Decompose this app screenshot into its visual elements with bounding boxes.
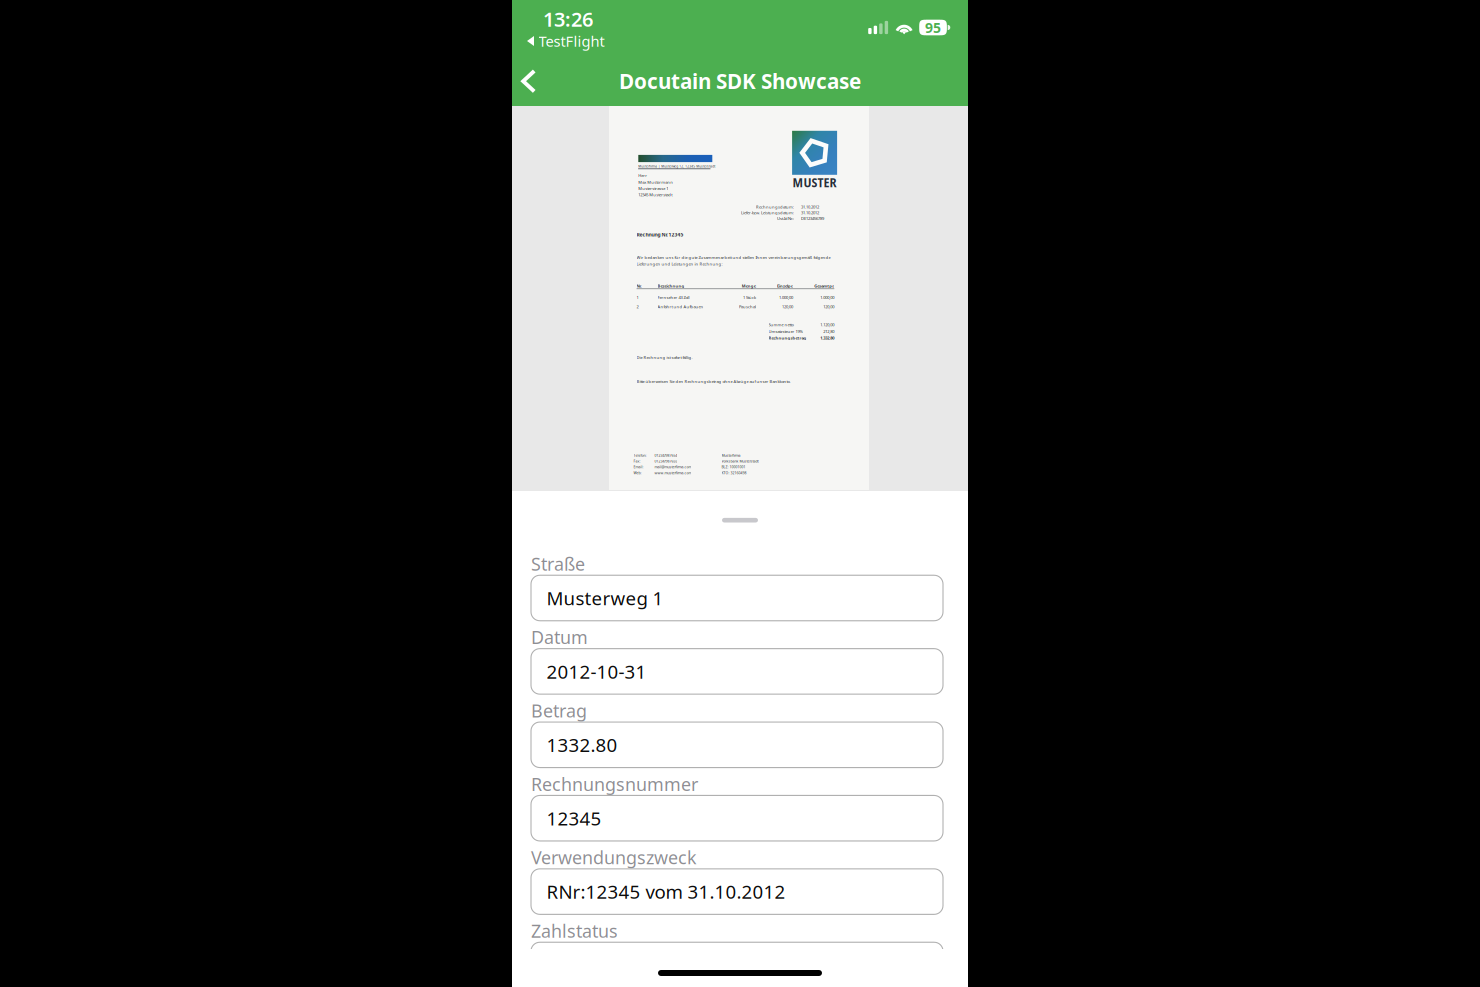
- staticText: Die Rechnung ist sofort fällig.: [637, 355, 693, 360]
- staticText: Fax:: [633, 459, 640, 463]
- staticText: Lieferungen und Leistungen in Rechnung:: [637, 261, 723, 267]
- staticText: 31.10.2012: [801, 204, 819, 210]
- staticText: Volksbank Musterstadt: [721, 459, 758, 463]
- staticText: Fernseher 43 Zoll: [658, 295, 690, 300]
- staticText: KTO: 32160498: [721, 470, 746, 475]
- staticText: Telefon:: [633, 453, 646, 458]
- staticText: 31.10.2012: [801, 210, 819, 215]
- staticText: Anfahrt und Aufbauen: [658, 304, 704, 309]
- staticText: Liefer-bzw. Leistungsdatum:: [741, 210, 794, 215]
- staticText: Ust-IdNr.:: [777, 216, 794, 221]
- staticText: Betrag: [531, 698, 587, 723]
- staticText: 120,00: [823, 304, 834, 309]
- button[interactable]: [531, 942, 943, 987]
- staticText: mail@musterfirma.com: [654, 465, 691, 469]
- staticText: Verwendungszweck: [531, 845, 697, 869]
- staticText: 1: [637, 295, 639, 300]
- staticText: 01234/987654: [654, 453, 677, 458]
- staticText: 212,80: [823, 329, 834, 334]
- staticText: Web:: [633, 470, 641, 475]
- staticText: Rechnung Nr. 12345: [637, 231, 684, 238]
- staticText: TestFlight: [538, 31, 604, 51]
- staticText: 12345: [546, 805, 601, 831]
- staticText: 1.332,80: [820, 335, 834, 340]
- staticText: Herr: [638, 172, 647, 178]
- staticText: Musterweg 1: [546, 585, 663, 611]
- staticText: BLZ: 10001001: [721, 465, 745, 469]
- staticText: 1.000,00: [820, 295, 834, 300]
- staticText: Rechnungsnummer: [531, 772, 698, 796]
- staticText: 13:26: [543, 5, 593, 33]
- staticText: Straße: [531, 552, 585, 576]
- staticText: Max Mustermann: [638, 179, 673, 185]
- button[interactable]: Back: [507, 58, 551, 104]
- staticText: 1332.80: [546, 732, 617, 757]
- staticText: 01234/987655: [654, 459, 677, 463]
- staticText: Wir bedanken uns für die gute Zusammenar…: [637, 255, 831, 260]
- staticText: 2012-10-31: [546, 659, 646, 684]
- staticText: Gesamtpr.: [814, 283, 834, 288]
- staticText: 1 Stück: [743, 295, 756, 300]
- staticText: Menge: [742, 283, 756, 288]
- staticText: Zahlstatus: [531, 919, 618, 943]
- staticText: Docutain SDK Showcase: [619, 67, 861, 95]
- staticText: Datum: [531, 625, 588, 649]
- button[interactable]: 1332.80: [531, 722, 943, 767]
- button[interactable]: 12345: [531, 795, 943, 841]
- staticText: Musterfirma: [721, 453, 740, 458]
- staticText: Musterstrasse 1: [638, 185, 668, 191]
- staticText: 1.000,00: [779, 295, 793, 300]
- staticText: 120,00: [782, 304, 793, 309]
- staticText: Musterfirma | Musterweg 12, 12345 Muster…: [638, 164, 715, 168]
- staticText: Summe netto: [768, 322, 793, 327]
- staticText: Email:: [633, 465, 643, 469]
- button[interactable]: RNr:12345 vom 31.10.2012: [531, 869, 943, 914]
- staticText: Pauschal: [739, 304, 756, 309]
- staticText: 1.120,00: [820, 322, 834, 327]
- staticText: Bezeichnung: [658, 283, 685, 288]
- staticText: www.musterfirma.com: [654, 470, 691, 475]
- staticText: 95: [925, 18, 941, 37]
- staticText: Einzelpr.: [777, 283, 793, 288]
- staticText: Nr.: [637, 283, 642, 288]
- staticText: Rechnungsdatum:: [756, 204, 794, 210]
- staticText: DE123456789: [801, 216, 824, 221]
- staticText: 12345 Musterstadt: [638, 192, 672, 197]
- staticText: Rechnungsbetrag: [768, 335, 806, 340]
- staticText: 2: [637, 304, 639, 309]
- staticText: Umsatzsteuer 19%: [768, 329, 802, 334]
- staticText: Bitte überweisen Sie den Rechnungsbetrag…: [637, 378, 791, 384]
- staticText: RNr:12345 vom 31.10.2012: [546, 879, 785, 904]
- staticText: MUSTER: [793, 174, 837, 191]
- button[interactable]: 2012-10-31: [531, 649, 943, 694]
- button[interactable]: Musterweg 1: [531, 575, 943, 621]
